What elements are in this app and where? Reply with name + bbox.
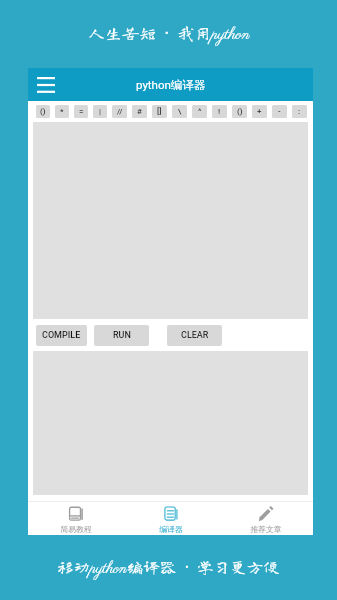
button[interactable]: : xyxy=(292,105,307,118)
staticText: - xyxy=(278,107,281,116)
staticText: \ xyxy=(178,107,182,116)
staticText: 编译器 xyxy=(159,524,183,534)
button[interactable]: - xyxy=(272,105,287,118)
button[interactable]: Open navigation menu xyxy=(28,68,64,101)
button[interactable]: COMPILE xyxy=(36,325,87,346)
staticText: + xyxy=(257,107,262,116)
staticText: * xyxy=(60,107,64,116)
staticText: COMPILE xyxy=(42,330,81,341)
button[interactable]: + xyxy=(252,105,267,118)
staticText: [] xyxy=(157,107,162,116)
staticText: : xyxy=(298,107,301,116)
staticText: 移动python编译器 · 学习更方便 xyxy=(57,555,280,580)
button[interactable]: = xyxy=(74,105,88,118)
button[interactable]: 推荐文章 xyxy=(218,502,313,535)
staticText: python编译器 xyxy=(136,78,206,92)
button[interactable]: # xyxy=(132,105,147,118)
staticText: CLEAR xyxy=(181,330,209,341)
staticText: () xyxy=(40,107,46,116)
button[interactable]: // xyxy=(112,105,127,118)
button[interactable]: RUN xyxy=(94,325,149,346)
button[interactable]: () xyxy=(232,105,247,118)
staticText: 人生苦短 · 我用python xyxy=(88,21,250,46)
button[interactable]: () xyxy=(36,105,50,118)
staticText: RUN xyxy=(113,330,131,341)
staticText: 简易教程 xyxy=(60,524,92,534)
button[interactable]: * xyxy=(55,105,69,118)
staticText: ! xyxy=(218,107,221,116)
staticText: 推荐文章 xyxy=(250,524,282,534)
button[interactable]: [] xyxy=(152,105,167,118)
button[interactable]: 简易教程 xyxy=(28,502,123,535)
staticText: ^ xyxy=(198,107,202,116)
staticText: = xyxy=(79,107,84,116)
staticText: () xyxy=(237,107,243,116)
button[interactable]: | xyxy=(93,105,107,118)
button[interactable]: CLEAR xyxy=(167,325,222,346)
button[interactable]: 编译器 xyxy=(123,502,218,535)
button[interactable]: ! xyxy=(212,105,227,118)
staticText: // xyxy=(117,107,123,116)
staticText: # xyxy=(137,107,142,116)
button[interactable]: ^ xyxy=(192,105,207,118)
staticText: | xyxy=(99,107,102,116)
button[interactable]: \ xyxy=(172,105,187,118)
